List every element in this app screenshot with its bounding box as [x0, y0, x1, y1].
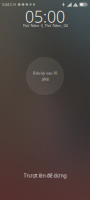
button[interactable]: Trượt lên để dừng	[0, 171, 90, 180]
staticText: phút	[41, 76, 48, 82]
button[interactable]: Báo lại sau 10	[26, 57, 64, 95]
staticText: Thứ Năm 3, Thứ Năm, 04	[22, 23, 67, 28]
staticText: Báo lại sau 10	[33, 70, 57, 76]
staticText: 05:00	[25, 6, 65, 27]
staticText: 5:04 CH	[2, 2, 16, 7]
staticText: Trượt lên để dừng	[23, 172, 66, 179]
